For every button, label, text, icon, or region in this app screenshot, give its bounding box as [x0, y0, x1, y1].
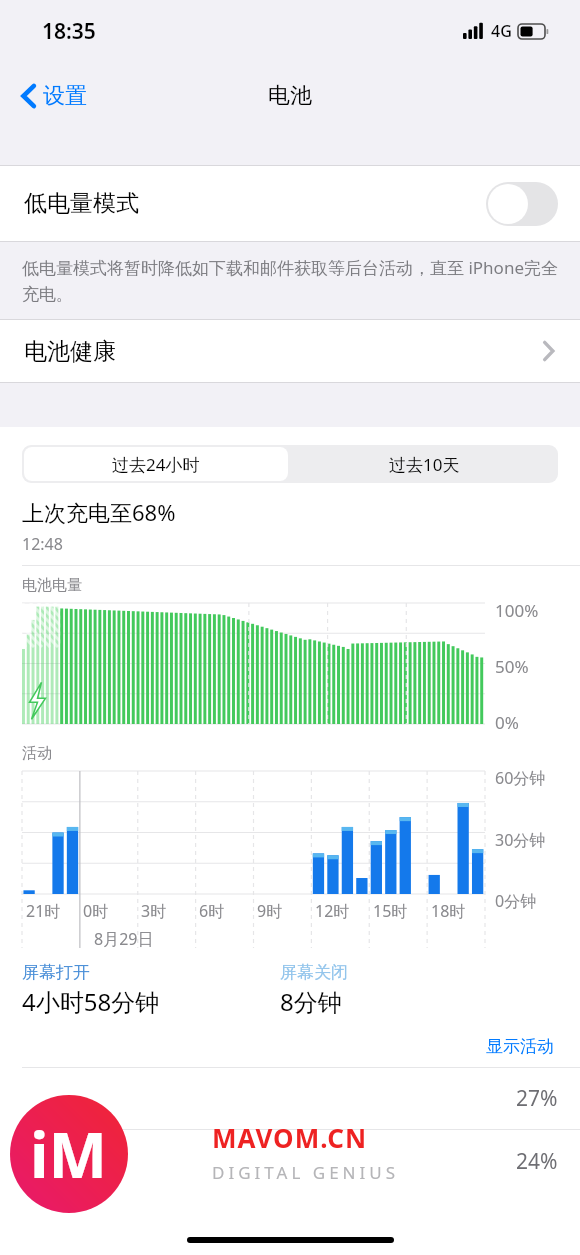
staticText: 18时 — [431, 900, 466, 922]
staticText: 屏幕打开 — [22, 962, 90, 983]
button[interactable]: 设置 — [16, 76, 93, 116]
staticText: 设置 — [43, 82, 87, 110]
staticText: 27% — [516, 1084, 558, 1113]
staticText: 18:35 — [42, 17, 96, 46]
staticText: 15时 — [373, 900, 408, 922]
staticText: 3时 — [141, 900, 167, 922]
staticText: 4G — [491, 20, 512, 42]
staticText: 上次充电至68% — [22, 497, 176, 527]
staticText: 12:48 — [22, 533, 63, 555]
staticText: MAVOM.CN — [212, 1120, 368, 1155]
button[interactable]: 显示活动 — [482, 1032, 558, 1061]
staticText: 低电量模式 — [24, 189, 139, 218]
staticText: 电池 — [268, 82, 312, 110]
staticText: 60分钟 — [495, 767, 546, 789]
staticText: 微信 — [78, 1149, 118, 1174]
staticText: 30分钟 — [495, 829, 546, 851]
staticText: 电池电量 — [22, 576, 82, 595]
staticText: 8月29日 — [94, 928, 154, 950]
staticText: 活动 — [22, 744, 52, 763]
staticText: 显示活动 — [486, 1036, 554, 1057]
button[interactable]: 27% — [0, 1068, 580, 1129]
staticText: 0% — [495, 711, 519, 734]
staticText: 0时 — [83, 900, 109, 922]
staticText: 过去10天 — [389, 453, 460, 476]
staticText: 电池健康 — [24, 337, 116, 366]
staticText: 50% — [495, 655, 529, 678]
button[interactable]: 过去24小时 — [24, 447, 288, 481]
staticText: 21时 — [26, 900, 61, 922]
staticText: 9时 — [257, 900, 283, 922]
button[interactable]: 低电量模式开关 — [486, 182, 558, 226]
staticText: 12时 — [315, 900, 350, 922]
staticText: 屏幕关闭 — [280, 962, 348, 983]
staticText: 24% — [516, 1147, 558, 1176]
button[interactable]: 微信 — [0, 1130, 580, 1192]
staticText: 8分钟 — [280, 985, 342, 1018]
staticText: 6时 — [199, 900, 225, 922]
button[interactable]: 电池健康 — [0, 320, 580, 382]
staticText: DIGITAL GENIUS — [212, 1161, 400, 1184]
button[interactable]: 过去10天 — [290, 445, 558, 483]
staticText: 4小时58分钟 — [22, 985, 160, 1018]
button[interactable]: 低电量模式 — [0, 166, 580, 241]
staticText: 100% — [495, 599, 539, 622]
staticText: 0分钟 — [495, 890, 537, 912]
staticText: iM — [30, 1112, 108, 1196]
staticText: 过去24小时 — [112, 453, 200, 476]
staticText: 低电量模式将暂时降低如下载和邮件获取等后台活动，直至 iPhone完全充电。 — [22, 256, 558, 305]
